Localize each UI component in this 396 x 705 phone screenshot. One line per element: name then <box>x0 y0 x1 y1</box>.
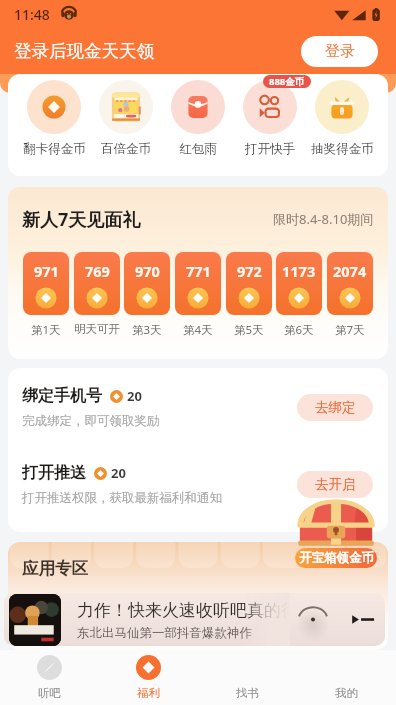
button[interactable]: 771 <box>175 252 221 338</box>
staticText: 1173 <box>282 261 316 281</box>
staticText: 东北出马仙第一部抖音爆款神作 <box>77 625 290 641</box>
button[interactable]: 翻卡得金币 <box>18 80 90 157</box>
staticText: 翻卡得金币 <box>23 141 86 157</box>
staticText: 第7天 <box>335 322 365 338</box>
button[interactable]: 找书 <box>198 650 297 705</box>
button[interactable]: Playlist <box>344 593 382 646</box>
staticText: 打开推送权限，获取最新福利和通知 <box>22 490 222 506</box>
staticText: 百倍金币 <box>101 141 151 157</box>
staticText: 完成绑定，即可领取奖励 <box>22 413 160 429</box>
staticText: 972 <box>237 261 262 281</box>
staticText: 第6天 <box>284 322 314 338</box>
button[interactable]: 去开启 <box>297 471 373 498</box>
staticText: 登录后现金天天领 <box>14 40 154 62</box>
staticText: 971 <box>34 261 59 281</box>
staticText: 970 <box>135 261 160 281</box>
staticText: 明天可开 <box>74 322 120 336</box>
staticText: 新人7天见面礼 <box>22 207 141 232</box>
staticText: 第5天 <box>234 322 264 338</box>
button[interactable]: 绑定手机号 <box>22 382 373 432</box>
staticText: 应用专区 <box>22 558 88 579</box>
button[interactable]: 抽奖得金币 <box>306 80 378 157</box>
button[interactable]: 听吧 <box>0 650 99 705</box>
button[interactable]: 打开快手 <box>234 80 306 157</box>
button[interactable]: 972 <box>226 252 272 338</box>
staticText: 开宝箱领金币 <box>299 550 374 566</box>
staticText: 第1天 <box>31 322 61 338</box>
staticText: 11:48 <box>14 5 50 24</box>
staticText: 红包雨 <box>179 141 217 157</box>
staticText: 第4天 <box>183 322 213 338</box>
button[interactable]: 去绑定 <box>297 394 373 421</box>
staticText: 力作！快来火速收听吧真的很好听 <box>77 600 290 621</box>
button[interactable]: 我的 <box>297 650 396 705</box>
button[interactable]: 开宝箱领金币 <box>295 548 377 568</box>
button[interactable]: 971 <box>23 252 69 338</box>
button[interactable]: 970 <box>124 252 170 338</box>
staticText: 去绑定 <box>315 399 356 416</box>
staticText: 打开推送 <box>22 463 86 483</box>
button[interactable]: 打开推送 <box>22 459 373 509</box>
staticText: 找书 <box>236 686 259 700</box>
staticText: 去开启 <box>315 476 356 493</box>
staticText: 20 <box>127 387 142 405</box>
button[interactable]: 红包雨 <box>162 80 234 157</box>
button[interactable]: 2074 <box>327 252 373 338</box>
staticText: 第3天 <box>132 322 162 338</box>
staticText: 2074 <box>333 261 367 281</box>
staticText: 20 <box>111 464 126 482</box>
staticText: 听吧 <box>38 686 61 700</box>
button[interactable]: 769 <box>74 252 120 336</box>
staticText: 打开快手 <box>245 141 295 157</box>
staticText: 888金币 <box>269 75 305 88</box>
staticText: 769 <box>85 261 110 281</box>
button[interactable]: 登录 <box>301 36 378 67</box>
button[interactable]: Play <box>289 593 337 646</box>
staticText: 福利 <box>137 686 160 700</box>
button[interactable]: 1173 <box>276 252 322 338</box>
staticText: 绑定手机号 <box>22 386 102 406</box>
button[interactable]: 福利 <box>99 650 198 705</box>
staticText: 限时8.4-8.10期间 <box>273 210 374 228</box>
button[interactable]: 力作！快来火速收听吧真的很好听 <box>4 593 385 646</box>
staticText: 我的 <box>335 686 358 700</box>
button[interactable]: 百倍金币 <box>90 80 162 157</box>
staticText: 771 <box>186 261 211 281</box>
staticText: 抽奖得金币 <box>311 141 374 157</box>
staticText: 登录 <box>325 42 355 61</box>
